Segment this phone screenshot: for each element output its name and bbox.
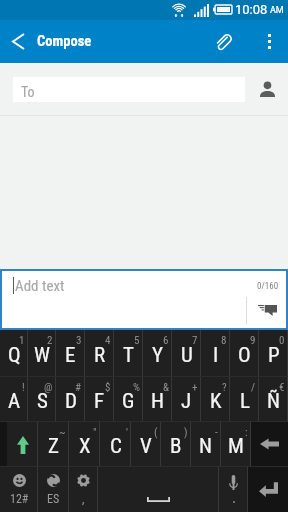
button[interactable]: Voice input bbox=[219, 467, 248, 512]
staticText: 9 bbox=[250, 334, 256, 347]
staticText: 0 bbox=[279, 334, 285, 347]
button[interactable]: ' bbox=[100, 422, 131, 466]
staticText: € bbox=[279, 381, 285, 394]
staticText: Compose bbox=[37, 33, 92, 50]
staticText: AM bbox=[270, 5, 284, 16]
staticText: % bbox=[133, 381, 140, 394]
staticText: D bbox=[65, 389, 77, 414]
staticText: 2 bbox=[47, 334, 53, 347]
button[interactable]: ~ bbox=[38, 422, 69, 466]
button[interactable]: € bbox=[259, 377, 288, 421]
button[interactable]: / bbox=[230, 377, 259, 421]
button[interactable]: 2 bbox=[28, 330, 56, 376]
staticText: ~ bbox=[59, 426, 66, 439]
staticText: F bbox=[94, 389, 105, 414]
staticText: K bbox=[210, 389, 222, 414]
button[interactable]: ES bbox=[38, 467, 69, 512]
staticText: + bbox=[192, 381, 198, 394]
button[interactable]: ? bbox=[201, 377, 230, 421]
button[interactable]: 12# bbox=[0, 467, 38, 512]
button[interactable]: 5 bbox=[114, 330, 143, 376]
staticText: 4 bbox=[105, 334, 111, 347]
button[interactable]: Backspace bbox=[251, 422, 288, 466]
button[interactable]: 8 bbox=[201, 330, 230, 376]
staticText: C bbox=[110, 434, 122, 459]
button[interactable]: : bbox=[221, 422, 251, 466]
button[interactable]: Back bbox=[0, 20, 36, 63]
button[interactable]: 0 bbox=[259, 330, 288, 376]
staticText: I bbox=[213, 343, 219, 368]
staticText: N bbox=[199, 434, 213, 459]
button[interactable]: @ bbox=[28, 377, 56, 421]
button[interactable]: Enter bbox=[248, 467, 288, 512]
staticText: # bbox=[75, 381, 82, 394]
button[interactable]: Pick contact bbox=[252, 76, 282, 102]
staticText: / bbox=[251, 381, 256, 394]
button[interactable]: To bbox=[13, 77, 245, 102]
button[interactable]: , bbox=[69, 467, 98, 512]
staticText: $ bbox=[105, 381, 111, 394]
button[interactable]: 9 bbox=[230, 330, 259, 376]
staticText: M bbox=[228, 434, 244, 459]
button[interactable]: Add text bbox=[2, 271, 286, 328]
button[interactable]: 1 bbox=[0, 330, 28, 376]
staticText: J bbox=[181, 389, 192, 414]
button[interactable]: % bbox=[114, 377, 143, 421]
staticText: H bbox=[151, 389, 165, 414]
staticText: Z bbox=[48, 434, 59, 459]
staticText: Add text bbox=[15, 277, 65, 295]
staticText: - bbox=[215, 426, 218, 439]
button[interactable]: Shift bbox=[7, 422, 38, 466]
button[interactable]: $ bbox=[85, 377, 114, 421]
staticText: 10:08 bbox=[235, 2, 268, 17]
staticText: , bbox=[82, 492, 85, 506]
button[interactable]: 4 bbox=[85, 330, 114, 376]
button[interactable]: # bbox=[56, 377, 85, 421]
button[interactable]: Attach bbox=[205, 20, 241, 63]
staticText: ! bbox=[22, 381, 25, 394]
button[interactable]: & bbox=[143, 377, 172, 421]
staticText: P bbox=[268, 343, 280, 368]
staticText: T bbox=[123, 343, 134, 368]
button[interactable]: - bbox=[191, 422, 221, 466]
staticText: ) bbox=[184, 426, 188, 439]
staticText: 7 bbox=[192, 334, 198, 347]
staticText: V bbox=[140, 434, 152, 459]
button[interactable]: Send message bbox=[251, 298, 288, 324]
staticText: & bbox=[163, 381, 169, 394]
staticText: 3 bbox=[76, 334, 82, 347]
button[interactable]: " bbox=[69, 422, 100, 466]
button[interactable]: 6 bbox=[143, 330, 172, 376]
button[interactable]: ) bbox=[161, 422, 191, 466]
staticText: Q bbox=[8, 343, 21, 368]
staticText: To bbox=[21, 84, 35, 100]
button[interactable]: 7 bbox=[172, 330, 201, 376]
staticText: B bbox=[170, 434, 182, 459]
staticText: A bbox=[8, 389, 21, 414]
staticText: 6 bbox=[163, 334, 169, 347]
staticText: 0/160 bbox=[257, 281, 279, 292]
staticText: ( bbox=[154, 426, 158, 439]
button[interactable]: ! bbox=[0, 377, 28, 421]
button[interactable]: Space bbox=[98, 467, 219, 512]
staticText: ES bbox=[47, 492, 60, 506]
button[interactable]: 3 bbox=[56, 330, 85, 376]
staticText: R bbox=[94, 343, 106, 368]
staticText: S bbox=[37, 389, 48, 414]
staticText: W bbox=[34, 343, 50, 368]
staticText: E bbox=[65, 343, 76, 368]
staticText: O bbox=[238, 343, 251, 368]
button[interactable]: More options bbox=[250, 20, 288, 63]
staticText: ? bbox=[222, 381, 227, 394]
staticText: X bbox=[79, 434, 91, 459]
staticText: L bbox=[240, 389, 250, 414]
button[interactable]: + bbox=[172, 377, 201, 421]
staticText: : bbox=[245, 426, 248, 439]
staticText: U bbox=[181, 343, 193, 368]
staticText: ' bbox=[126, 426, 128, 439]
staticText: " bbox=[93, 426, 97, 439]
button[interactable]: ( bbox=[131, 422, 161, 466]
staticText: 8 bbox=[221, 334, 227, 347]
staticText: Y bbox=[152, 343, 164, 368]
staticText: G bbox=[122, 389, 135, 414]
